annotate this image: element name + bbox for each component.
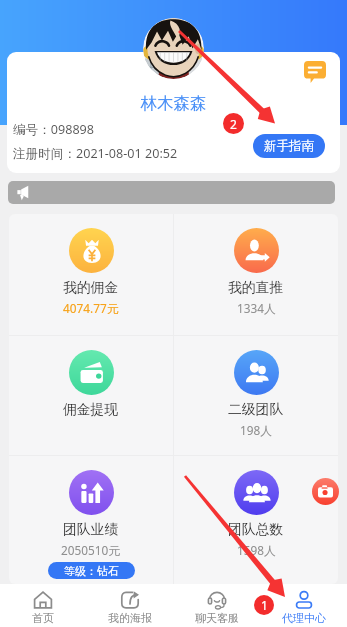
button[interactable]: Avatar — [143, 18, 204, 79]
staticText: 代理中心 — [282, 611, 326, 625]
button[interactable]: Messages — [302, 59, 328, 85]
staticText: 聊天客服 — [195, 611, 239, 625]
button[interactable]: Camera — [312, 478, 339, 505]
button[interactable]: 团队业绩 — [9, 456, 173, 584]
staticText: 新手指南 — [264, 138, 314, 154]
staticText: 二级团队 — [228, 401, 284, 418]
staticText: 1598人 — [237, 542, 276, 558]
staticText: 团队总数 — [228, 521, 284, 538]
staticText: 我的海报 — [108, 611, 152, 625]
staticText: 2050510元 — [61, 542, 121, 558]
button[interactable]: 我的佣金 — [9, 214, 173, 335]
button[interactable]: Announcement — [8, 181, 335, 204]
staticText: 团队业绩 — [63, 521, 119, 538]
button[interactable]: 首页 — [0, 584, 86, 627]
button[interactable]: 团队总数 — [174, 456, 338, 584]
staticText: 林木森森 — [7, 93, 340, 114]
staticText: 我的直推 — [228, 279, 284, 296]
staticText: 等级：钻石 — [64, 564, 119, 578]
button[interactable]: 等级：钻石 — [48, 562, 135, 579]
staticText: 我的佣金 — [63, 279, 119, 296]
staticText: 编号：098898 — [13, 121, 95, 138]
button[interactable]: 新手指南 — [253, 134, 325, 158]
button[interactable]: 二级团队 — [174, 336, 338, 455]
staticText: 佣金提现 — [63, 401, 119, 418]
staticText: 1 — [261, 597, 268, 613]
staticText: 4074.77元 — [63, 300, 119, 316]
staticText: 1334人 — [237, 300, 276, 316]
staticText: 注册时间：2021-08-01 20:52 — [13, 145, 178, 162]
staticText: 198人 — [240, 422, 273, 438]
button[interactable]: 佣金提现 — [9, 336, 173, 455]
staticText: 首页 — [32, 611, 54, 625]
button[interactable]: 我的海报 — [86, 584, 173, 627]
button[interactable]: 我的直推 — [174, 214, 338, 335]
button[interactable]: 聊天客服 — [173, 584, 260, 627]
staticText: 2 — [230, 116, 237, 132]
button[interactable]: 代理中心 — [260, 584, 347, 627]
